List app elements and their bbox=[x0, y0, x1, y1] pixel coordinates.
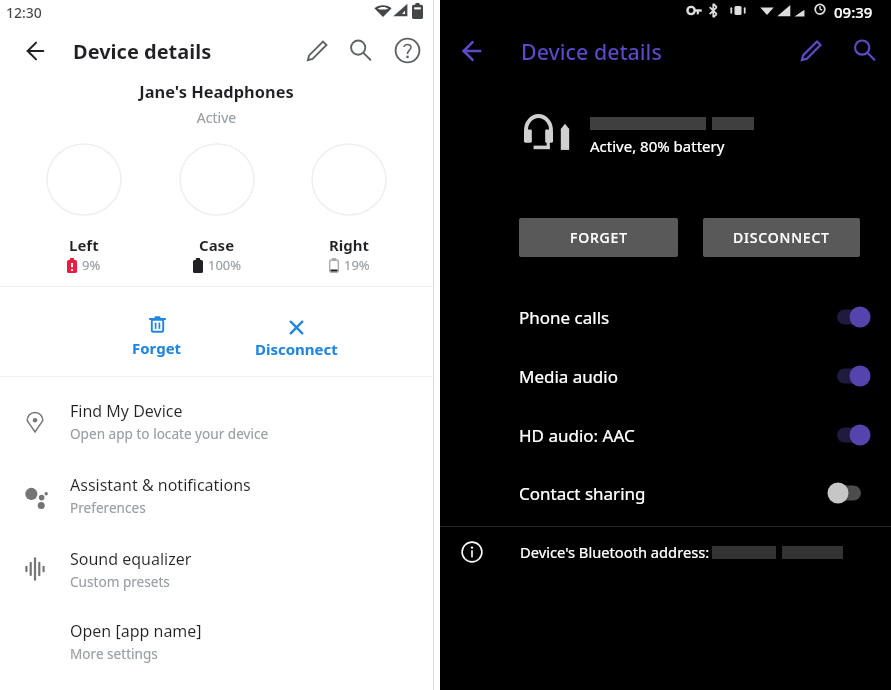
button[interactable]: Device's Bluetooth address: bbox=[440, 537, 891, 567]
staticText: Active, 80% battery bbox=[590, 136, 725, 156]
button[interactable]: Edit bbox=[797, 36, 826, 65]
staticText: Right bbox=[329, 235, 370, 255]
staticText: Left bbox=[69, 235, 99, 255]
button[interactable]: Back bbox=[17, 32, 54, 69]
button[interactable]: Open [app name] bbox=[0, 611, 433, 671]
staticText: Jane's Headphones bbox=[0, 80, 433, 102]
button[interactable]: FORGET bbox=[519, 218, 678, 257]
button[interactable]: Help bbox=[393, 36, 422, 65]
staticText: Device's Bluetooth address: bbox=[520, 542, 710, 562]
staticText: Sound equalizer bbox=[70, 548, 192, 570]
button[interactable]: DISCONNECT bbox=[703, 218, 860, 257]
staticText: Preferences bbox=[70, 498, 146, 517]
staticText: HD audio: AAC bbox=[519, 424, 635, 447]
staticText: FORGET bbox=[570, 228, 628, 247]
staticText: 100% bbox=[208, 256, 242, 274]
button[interactable]: Search bbox=[346, 36, 375, 65]
staticText: Device details bbox=[521, 37, 662, 66]
staticText: Device details bbox=[73, 38, 212, 65]
staticText: DISCONNECT bbox=[733, 228, 830, 247]
staticText: Phone calls bbox=[519, 306, 610, 329]
button[interactable]: Contact sharing bbox=[440, 464, 891, 522]
button[interactable]: Edit bbox=[303, 36, 332, 65]
button[interactable]: Assistant & notifications bbox=[0, 465, 433, 525]
staticText: Custom presets bbox=[70, 572, 170, 591]
button[interactable]: HD audio: AAC bbox=[440, 406, 891, 464]
button[interactable]: Media audio bbox=[440, 347, 891, 405]
staticText: Media audio bbox=[519, 365, 618, 388]
staticText: Assistant & notifications bbox=[70, 474, 251, 496]
button[interactable]: Back bbox=[453, 32, 491, 70]
button[interactable]: Forget bbox=[126, 300, 188, 364]
staticText: Active bbox=[0, 108, 433, 127]
button[interactable]: Find My Device bbox=[0, 391, 433, 451]
staticText: Disconnect bbox=[255, 339, 338, 359]
staticText: More settings bbox=[70, 644, 158, 663]
staticText: Open [app name] bbox=[70, 620, 202, 642]
staticText: 12:30 bbox=[6, 3, 42, 22]
staticText: Contact sharing bbox=[519, 482, 646, 505]
staticText: 9% bbox=[82, 256, 101, 274]
button[interactable]: Phone calls bbox=[440, 288, 891, 346]
button[interactable]: Sound equalizer bbox=[0, 539, 433, 599]
staticText: Open app to locate your device bbox=[70, 424, 269, 443]
staticText: 09:39 bbox=[834, 2, 873, 22]
button[interactable]: Disconnect bbox=[252, 300, 341, 364]
staticText: Find My Device bbox=[70, 400, 183, 422]
staticText: Forget bbox=[132, 338, 182, 358]
staticText: 19% bbox=[344, 256, 370, 274]
button[interactable]: Search bbox=[850, 36, 879, 65]
staticText: Case bbox=[199, 235, 235, 255]
